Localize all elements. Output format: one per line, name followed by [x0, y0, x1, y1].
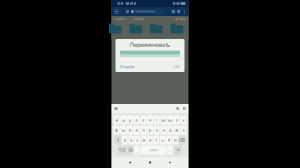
- button[interactable]: ?123: [118, 146, 126, 155]
- button[interactable]: а: [134, 125, 140, 134]
- button[interactable]: э: [181, 125, 186, 134]
- staticText: ю: [174, 137, 177, 143]
- button[interactable]: More options: [182, 9, 186, 14]
- button[interactable]: [132, 9, 164, 14]
- staticText: щ: [168, 117, 172, 122]
- staticText: н: [149, 117, 151, 122]
- staticText: е: [142, 117, 144, 122]
- staticText: Русский: [148, 148, 158, 152]
- button[interactable]: Storage: [126, 10, 129, 13]
- button[interactable]: Folder: [109, 24, 121, 33]
- staticText: ц: [122, 117, 124, 122]
- button[interactable]: и: [147, 135, 153, 144]
- button[interactable]: Home: [149, 161, 151, 164]
- button[interactable]: ч: [128, 135, 134, 144]
- button[interactable]: Folder: [170, 24, 183, 33]
- staticText: в: [129, 127, 131, 133]
- button[interactable]: ☺: [127, 146, 133, 155]
- button[interactable]: Settings: [176, 107, 179, 110]
- button[interactable]: ю: [172, 135, 178, 144]
- button[interactable]: ⏎: [173, 146, 182, 155]
- staticText: Отмена: [120, 64, 134, 69]
- staticText: и: [149, 137, 151, 143]
- button[interactable]: з: [174, 115, 180, 124]
- staticText: п: [142, 127, 144, 133]
- staticText: ч: [130, 137, 132, 143]
- button[interactable]: ш: [160, 115, 166, 124]
- button[interactable]: Folder: [129, 24, 142, 33]
- button[interactable]: ф: [114, 125, 119, 134]
- button[interactable]: м: [141, 135, 146, 144]
- button[interactable]: Отмена: [120, 64, 136, 69]
- staticText: ⏎: [176, 148, 179, 152]
- button[interactable]: ,: [134, 146, 140, 155]
- staticText: ⇧: [116, 138, 119, 142]
- button[interactable]: к: [134, 115, 140, 124]
- button[interactable]: Recents: [169, 162, 171, 163]
- button[interactable]: ⌫: [179, 135, 185, 144]
- staticText: я: [124, 137, 126, 143]
- button[interactable]: у: [127, 115, 133, 124]
- button[interactable]: в: [127, 125, 133, 134]
- button[interactable]: ь: [160, 135, 165, 144]
- staticText: й: [115, 117, 117, 122]
- staticText: ь: [162, 137, 164, 143]
- button[interactable]: щ: [167, 115, 173, 124]
- button[interactable]: .: [167, 146, 173, 155]
- button[interactable]: ы: [120, 125, 126, 134]
- staticText: м: [142, 137, 145, 143]
- button[interactable]: с: [135, 135, 140, 144]
- staticText: Переименовать: [130, 41, 170, 48]
- staticText: ш: [161, 117, 165, 122]
- button[interactable]: р: [147, 125, 153, 134]
- staticText: а: [136, 127, 138, 133]
- staticText: х: [182, 117, 184, 122]
- button[interactable]: б: [166, 135, 172, 144]
- button[interactable]: View mode: [177, 10, 180, 13]
- staticText: з: [176, 117, 178, 122]
- staticText: к: [136, 117, 138, 122]
- button[interactable]: ОК: [170, 64, 180, 69]
- button[interactable]: Русский: [140, 146, 166, 155]
- button[interactable]: н: [147, 115, 153, 124]
- button[interactable]: г: [154, 115, 160, 124]
- button[interactable]: ж: [174, 125, 180, 134]
- button[interactable]: Menu: [113, 7, 120, 15]
- button[interactable]: е: [140, 115, 146, 124]
- staticText: ф: [115, 127, 118, 133]
- staticText: о: [156, 127, 158, 133]
- button[interactable]: я: [122, 135, 128, 144]
- button[interactable]: л: [160, 125, 166, 134]
- button[interactable]: Search: [183, 107, 185, 110]
- button[interactable]: ц: [120, 115, 126, 124]
- staticText: ⌫: [179, 138, 185, 142]
- button[interactable]: п: [140, 125, 146, 134]
- button[interactable]: Folder: [150, 24, 162, 33]
- button[interactable]: ⇧: [115, 135, 121, 144]
- staticText: д: [169, 127, 171, 133]
- button[interactable]: Clipboard: [114, 107, 117, 110]
- staticText: у: [129, 117, 131, 122]
- staticText: э: [182, 127, 184, 133]
- button[interactable]: т: [154, 135, 159, 144]
- staticText: ,: [136, 147, 137, 153]
- staticText: ☺: [128, 148, 132, 152]
- staticText: ?123: [119, 148, 126, 152]
- staticText: т: [155, 137, 157, 143]
- button[interactable]: х: [181, 115, 186, 124]
- staticText: л: [162, 127, 164, 133]
- button[interactable]: д: [167, 125, 173, 134]
- staticText: ОК: [174, 64, 180, 69]
- staticText: с: [136, 137, 138, 143]
- button[interactable]: о: [154, 125, 160, 134]
- button[interactable]: й: [114, 115, 119, 124]
- staticText: б: [168, 137, 170, 143]
- staticText: р: [149, 127, 151, 133]
- staticText: ж: [175, 127, 178, 133]
- button[interactable]: Back: [129, 162, 131, 163]
- staticText: ы: [122, 127, 125, 133]
- staticText: г: [156, 117, 158, 122]
